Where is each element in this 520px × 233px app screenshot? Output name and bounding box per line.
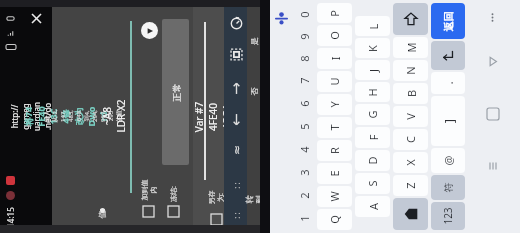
button[interactable]: R	[317, 140, 352, 161]
button[interactable]: Speed	[227, 14, 245, 32]
staticText: 3	[297, 169, 312, 176]
button[interactable]: 是	[247, 34, 260, 50]
staticText: 是	[248, 38, 258, 45]
staticText: D	[365, 156, 380, 165]
button[interactable]: V	[393, 106, 428, 127]
button[interactable]: 返回	[431, 3, 465, 39]
button[interactable]: M	[393, 37, 428, 58]
button[interactable]: F	[355, 127, 390, 148]
button[interactable]: Switch language	[275, 12, 288, 25]
staticText: 123	[441, 207, 455, 225]
button[interactable]: P	[317, 3, 352, 23]
button[interactable]: U	[317, 71, 352, 92]
button[interactable]: 5	[293, 115, 315, 138]
button[interactable]: 0	[293, 3, 315, 25]
button[interactable]: 冻结:	[161, 7, 186, 225]
button[interactable]: Grid	[229, 208, 243, 222]
button[interactable]: 7	[293, 69, 315, 92]
button[interactable]: 9	[293, 25, 315, 47]
button[interactable]: Backspace	[393, 198, 428, 230]
button[interactable]: 否	[247, 84, 260, 100]
staticText: 加到值内	[139, 177, 157, 202]
staticText: H	[365, 88, 380, 97]
staticText: ]	[439, 118, 457, 123]
button[interactable]: Home	[487, 108, 499, 120]
staticText: ~A8 LDR X2	[100, 98, 128, 134]
staticText: U	[327, 77, 342, 86]
staticText: W	[327, 191, 342, 202]
button[interactable]: Enter	[431, 41, 465, 70]
button[interactable]: E	[317, 163, 352, 184]
staticText: 输入从-2,147,483,648到4,294,967,295的值	[43, 109, 123, 123]
button[interactable]: 4	[293, 138, 315, 161]
button[interactable]: Q	[317, 209, 352, 230]
staticText: @	[440, 155, 455, 165]
button[interactable]: 1	[293, 207, 315, 230]
button[interactable]: O	[317, 25, 352, 46]
button[interactable]: ≈	[228, 142, 244, 158]
staticText: B	[403, 89, 418, 97]
button[interactable]: Back	[486, 55, 499, 68]
button[interactable]: G	[355, 104, 390, 125]
staticText: 9	[297, 33, 312, 40]
staticText: 5	[297, 123, 312, 130]
button[interactable]: 另存为:	[208, 0, 224, 233]
staticText: 14:15	[5, 207, 16, 228]
staticText: 1	[297, 215, 312, 222]
staticText: N	[403, 66, 418, 75]
staticText: 冻结:	[168, 181, 178, 206]
button[interactable]: D	[355, 150, 390, 171]
button[interactable]: T	[317, 117, 352, 138]
button[interactable]: 123	[431, 202, 465, 230]
staticText: Var #74FE4013C4	[191, 101, 233, 132]
staticText: 正常	[170, 83, 181, 101]
staticText: 转到	[243, 196, 263, 203]
button[interactable]: L	[355, 16, 390, 36]
button[interactable]: C	[393, 129, 428, 150]
staticText: 2	[297, 192, 312, 199]
button[interactable]: A	[355, 196, 390, 217]
button[interactable]: 8	[293, 47, 315, 69]
button[interactable]: H	[355, 82, 390, 102]
staticText: 符	[441, 182, 454, 192]
button[interactable]: N	[393, 60, 428, 81]
button[interactable]: J	[355, 60, 390, 80]
button[interactable]: 转到	[247, 187, 260, 213]
button[interactable]: S	[355, 173, 390, 194]
staticText: : :	[231, 182, 242, 189]
button[interactable]: X	[393, 152, 428, 173]
button[interactable]: Down	[227, 110, 245, 128]
button[interactable]: Close	[28, 10, 45, 27]
button[interactable]: Up	[227, 79, 245, 97]
button[interactable]: Shift	[393, 3, 428, 35]
staticText: 值:	[96, 208, 107, 219]
staticText: G	[365, 110, 380, 119]
button[interactable]: 符	[431, 175, 465, 200]
button[interactable]: Run	[141, 22, 158, 39]
button[interactable]: B	[393, 83, 428, 104]
button[interactable]: 正常	[162, 19, 189, 165]
button[interactable]: I	[317, 48, 352, 69]
button[interactable]: Recents	[487, 160, 499, 172]
staticText: P	[327, 10, 342, 17]
button[interactable]: 3	[293, 161, 315, 184]
staticText: : :	[231, 212, 242, 219]
button[interactable]: Y	[317, 94, 352, 115]
button[interactable]: .	[431, 72, 465, 94]
staticText: 6	[297, 100, 312, 107]
button[interactable]: K	[355, 38, 390, 58]
staticText: S	[365, 180, 380, 187]
button[interactable]: Z	[393, 175, 428, 196]
button[interactable]: ]	[431, 96, 465, 146]
button[interactable]: 2	[293, 184, 315, 207]
button[interactable]: More	[229, 178, 243, 192]
button[interactable]: W	[317, 186, 352, 207]
button[interactable]: @	[431, 148, 465, 173]
button[interactable]: 加到值内	[136, 7, 161, 225]
button[interactable]: 6	[293, 92, 315, 115]
button[interactable]: Menu	[487, 12, 498, 23]
staticText: E	[327, 170, 342, 177]
staticText: 4	[297, 146, 312, 153]
button[interactable]: Select region	[227, 45, 245, 63]
staticText: L	[365, 23, 380, 29]
